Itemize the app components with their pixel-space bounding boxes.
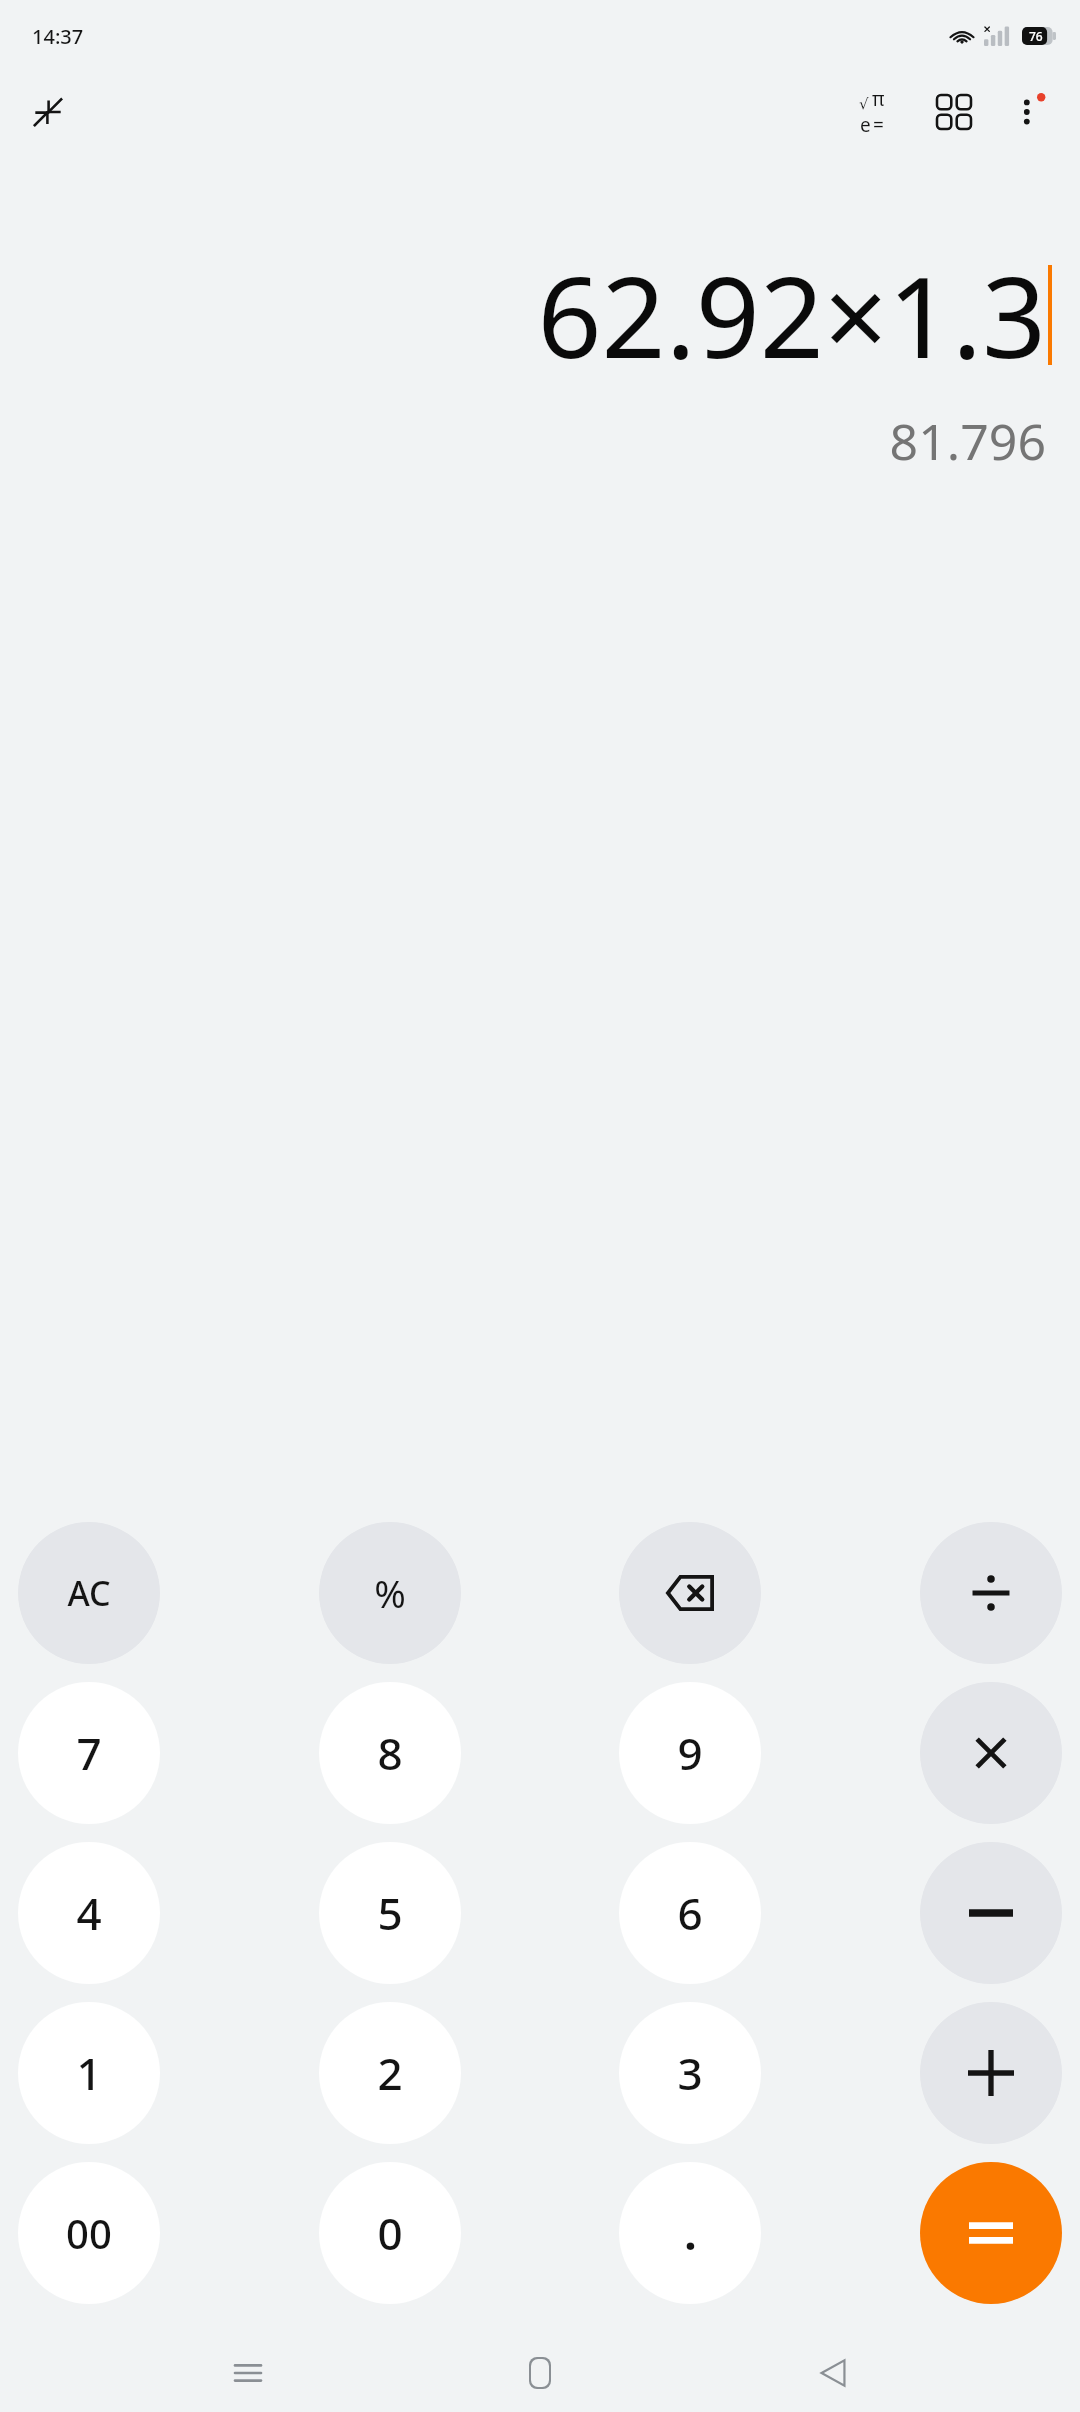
button[interactable]: Converters	[918, 76, 990, 148]
button[interactable]: Collapse	[20, 84, 76, 140]
button[interactable]: %	[319, 1522, 461, 1664]
staticText: =	[873, 112, 884, 138]
staticText: 4	[76, 1883, 102, 1943]
button[interactable]: Plus	[920, 2002, 1062, 2144]
button[interactable]: Multiply	[920, 1682, 1062, 1824]
staticText: 2	[377, 2043, 403, 2103]
staticText: .	[684, 2203, 697, 2263]
button[interactable]: Equals	[920, 2162, 1062, 2304]
button[interactable]: Home	[495, 2334, 585, 2412]
staticText: 00	[66, 2206, 112, 2260]
button[interactable]: Back	[788, 2334, 878, 2412]
button[interactable]: Minus	[920, 1842, 1062, 1984]
button[interactable]: Recents	[203, 2334, 293, 2412]
button[interactable]: Divide	[920, 1522, 1062, 1664]
staticText: 0	[377, 2203, 403, 2263]
staticText: e	[860, 112, 871, 138]
button[interactable]: Backspace	[619, 1522, 761, 1664]
button[interactable]: More options	[994, 76, 1066, 148]
staticText: 14:37	[32, 23, 84, 50]
staticText: 1	[76, 2043, 102, 2103]
button[interactable]: 5	[319, 1842, 461, 1984]
staticText: 9	[677, 1723, 703, 1783]
button[interactable]: AC	[18, 1522, 160, 1664]
button[interactable]: 8	[319, 1682, 461, 1824]
staticText: AC	[67, 1570, 111, 1616]
staticText: 62.92×1.3	[537, 238, 1046, 391]
button[interactable]: 00	[18, 2162, 160, 2304]
button[interactable]: 7	[18, 1682, 160, 1824]
staticText: 3	[677, 2043, 703, 2103]
button[interactable]: 4	[18, 1842, 160, 1984]
staticText: √	[859, 95, 869, 112]
button[interactable]: .	[619, 2162, 761, 2304]
staticText: π	[872, 86, 885, 112]
staticText: 7	[76, 1723, 102, 1783]
staticText: 81.796	[889, 407, 1046, 475]
button[interactable]: 6	[619, 1842, 761, 1984]
button[interactable]: 0	[319, 2162, 461, 2304]
button[interactable]: 9	[619, 1682, 761, 1824]
button[interactable]: 1	[18, 2002, 160, 2144]
staticText: 76	[1029, 28, 1043, 44]
button[interactable]: Scientific mode	[836, 76, 908, 148]
staticText: 6	[677, 1883, 703, 1943]
staticText: 8	[377, 1723, 403, 1783]
button[interactable]: 3	[619, 2002, 761, 2144]
staticText: %	[374, 1567, 406, 1619]
staticText: 5	[377, 1883, 403, 1943]
button[interactable]: 2	[319, 2002, 461, 2144]
